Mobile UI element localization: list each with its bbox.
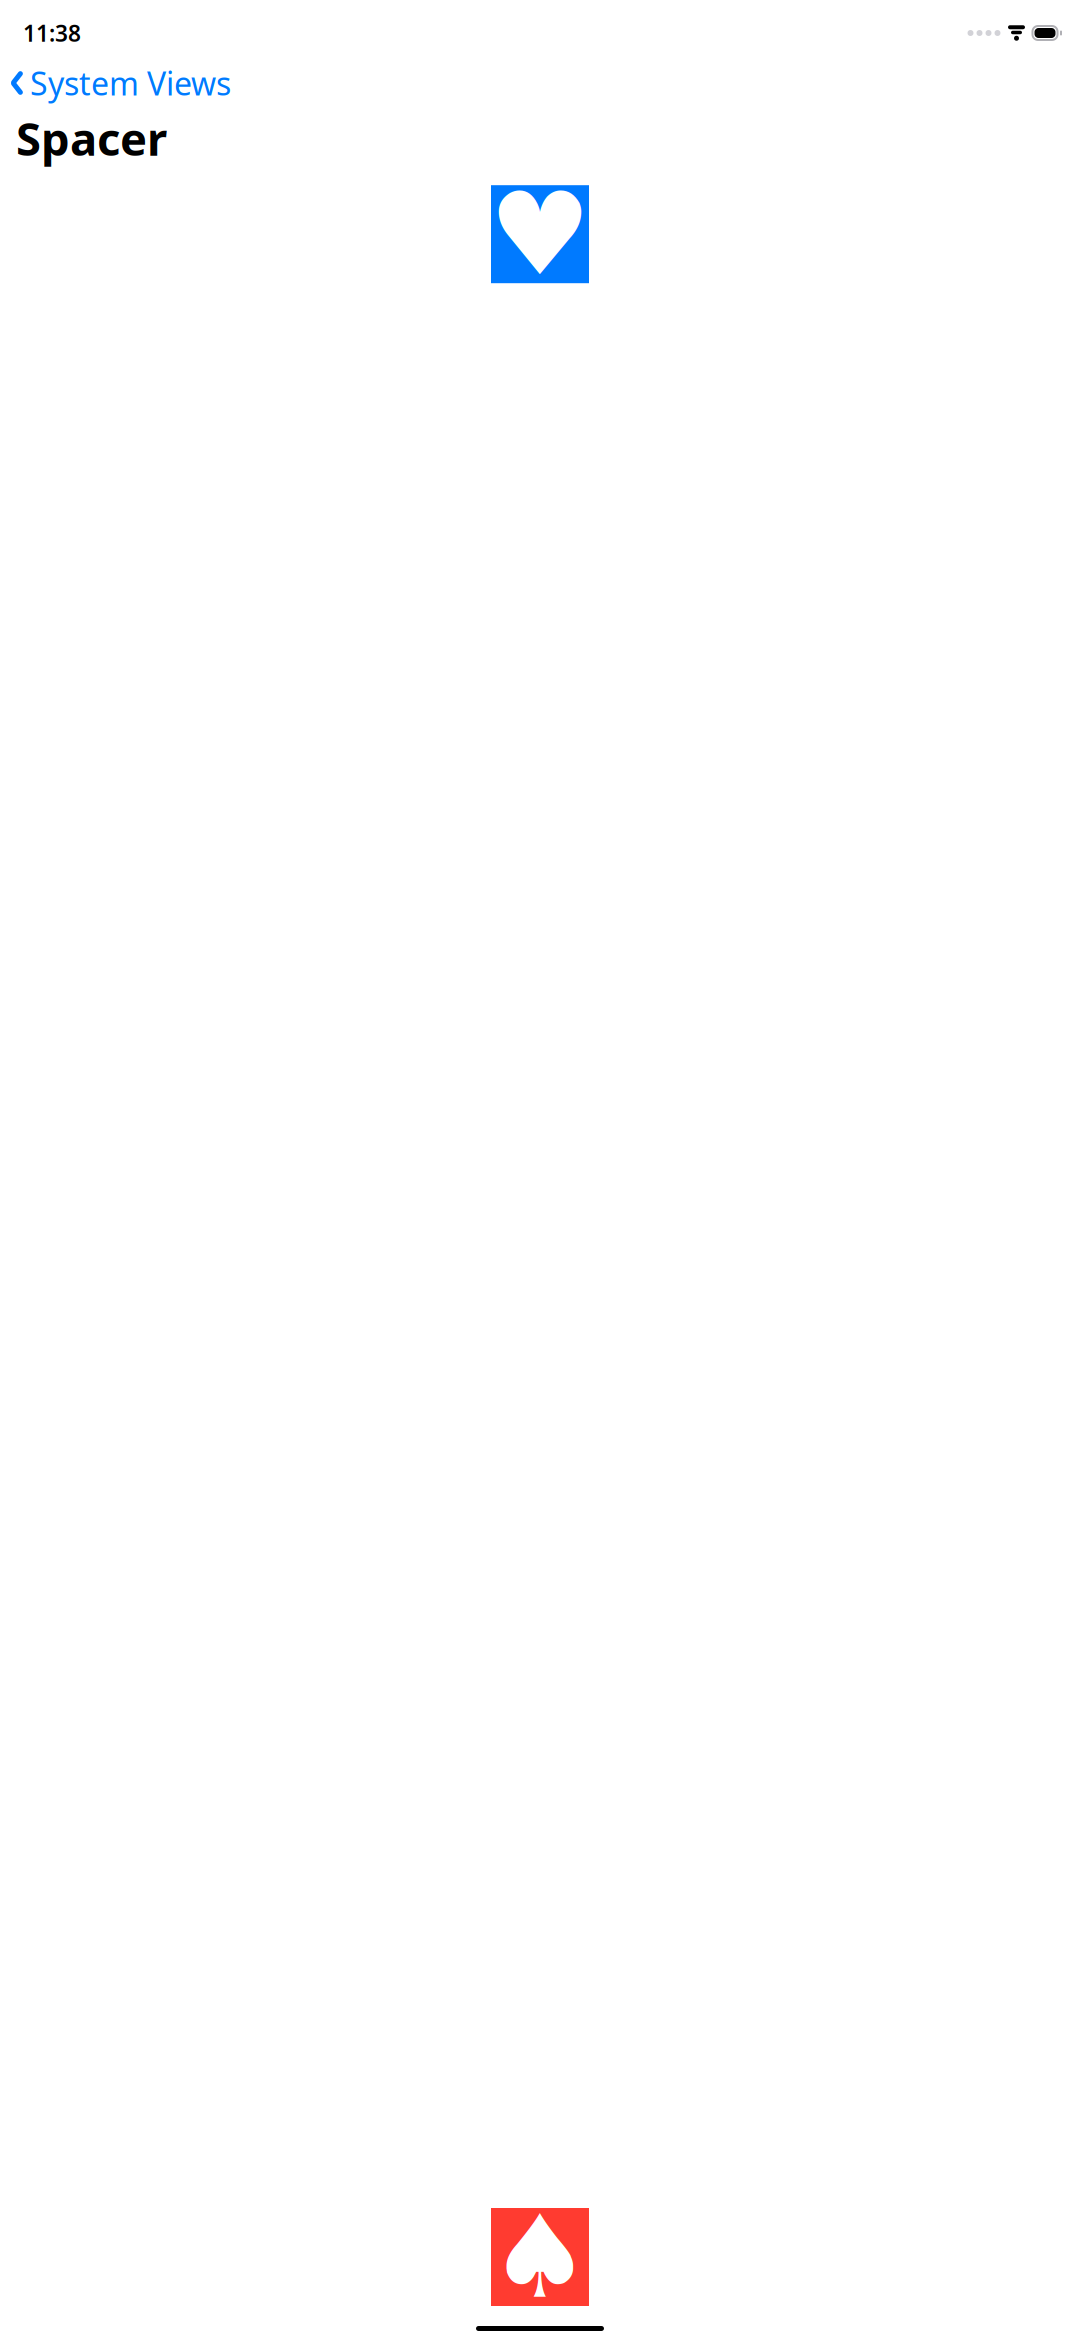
staticText: Spacer	[16, 108, 167, 168]
button[interactable]: System Views	[0, 61, 241, 105]
staticText: 11:38	[23, 18, 81, 48]
staticText: System Views	[30, 62, 231, 104]
staticText: ♠	[488, 2192, 591, 2322]
staticText: ♥	[488, 169, 591, 299]
